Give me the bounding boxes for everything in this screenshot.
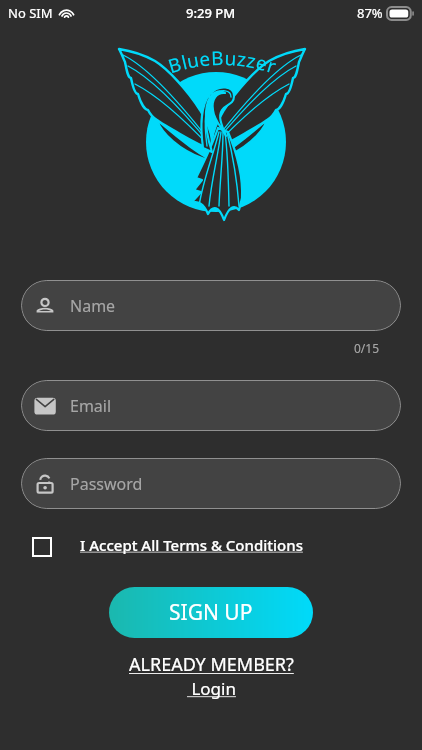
staticText: Email (70, 395, 112, 417)
button[interactable]: Password (21, 458, 401, 509)
staticText: 0/15 (354, 340, 380, 356)
staticText: No SIM (8, 4, 53, 22)
button[interactable]: Accept terms checkbox (32, 537, 52, 557)
button[interactable]: Login (187, 677, 236, 700)
staticText: Name (70, 295, 116, 317)
button[interactable]: ALREADY MEMBER? (129, 652, 294, 677)
button[interactable]: I Accept All Terms & Conditions (80, 535, 303, 555)
button[interactable]: SIGN UP (109, 587, 313, 638)
button[interactable]: Name (21, 280, 401, 331)
staticText: 87% (357, 4, 383, 22)
staticText: 9:29 PM (186, 4, 236, 22)
button[interactable]: Email (21, 380, 401, 431)
staticText: Password (70, 473, 143, 495)
staticText: SIGN UP (169, 598, 253, 627)
